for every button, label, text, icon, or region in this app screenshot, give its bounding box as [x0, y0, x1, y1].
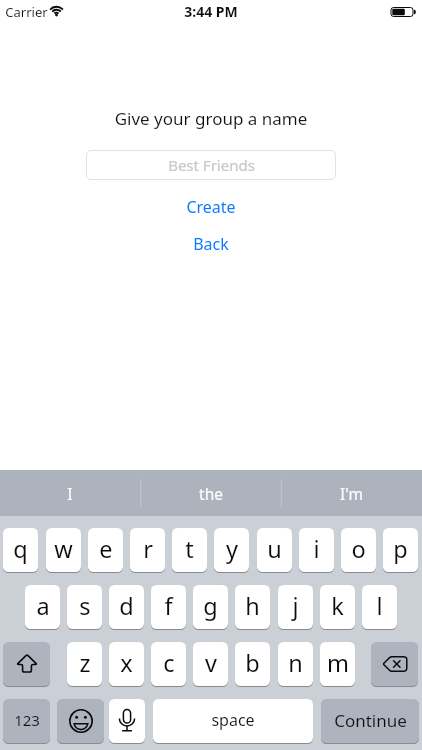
button[interactable]: x — [109, 642, 144, 686]
staticText: d — [119, 590, 134, 622]
staticText: n — [288, 647, 303, 679]
button[interactable]: m — [320, 642, 355, 686]
staticText: h — [245, 590, 260, 622]
button[interactable]: t — [172, 528, 207, 572]
staticText: space — [211, 709, 255, 731]
button[interactable]: h — [235, 585, 270, 629]
button[interactable]: 123 — [3, 699, 50, 743]
staticText: I — [67, 483, 73, 504]
staticText: a — [36, 590, 50, 622]
staticText: s — [79, 590, 91, 622]
staticText: Create — [186, 196, 236, 218]
button[interactable]: the — [140, 470, 281, 516]
staticText: z — [79, 647, 91, 679]
button[interactable]: r — [130, 528, 165, 572]
staticText: 123 — [14, 710, 40, 730]
staticText: u — [267, 533, 282, 565]
button[interactable]: g — [193, 585, 228, 629]
button[interactable]: a — [25, 585, 60, 629]
staticText: o — [351, 533, 366, 565]
button[interactable]: l — [362, 585, 397, 629]
staticText: w — [54, 533, 73, 565]
staticText: t — [185, 533, 194, 565]
staticText: c — [163, 647, 175, 679]
button[interactable]: o — [341, 528, 376, 572]
button[interactable] — [57, 699, 104, 743]
button[interactable]: k — [320, 585, 355, 629]
staticText: p — [393, 533, 408, 565]
button[interactable]: Best Friends — [86, 150, 336, 180]
staticText: v — [205, 647, 217, 679]
button[interactable]: d — [109, 585, 144, 629]
button[interactable]: Continue — [321, 699, 419, 743]
button[interactable]: v — [193, 642, 228, 686]
staticText: e — [99, 533, 113, 565]
staticText: Carrier — [5, 3, 48, 21]
button[interactable]: I'm — [281, 470, 421, 516]
button[interactable]: e — [88, 528, 123, 572]
button[interactable]: p — [383, 528, 418, 572]
staticText: 3:44 PM — [0, 2, 422, 21]
button[interactable]: f — [151, 585, 186, 629]
button[interactable] — [371, 642, 418, 686]
button[interactable] — [3, 642, 50, 686]
staticText: y — [226, 533, 238, 565]
button[interactable]: Back — [0, 233, 422, 255]
staticText: l — [376, 590, 383, 622]
button[interactable]: n — [278, 642, 313, 686]
staticText: Back — [193, 233, 229, 255]
staticText: Best Friends — [168, 155, 255, 175]
button[interactable]: b — [235, 642, 270, 686]
button[interactable]: space — [153, 699, 313, 743]
button[interactable]: w — [46, 528, 81, 572]
staticText: I'm — [340, 483, 363, 504]
staticText: f — [164, 590, 173, 622]
button[interactable]: j — [278, 585, 313, 629]
button[interactable]: I — [0, 470, 140, 516]
button[interactable]: i — [299, 528, 334, 572]
staticText: k — [331, 590, 344, 622]
staticText: Give your group a name — [0, 107, 422, 130]
button[interactable]: z — [67, 642, 102, 686]
button[interactable]: u — [257, 528, 292, 572]
button[interactable] — [109, 699, 145, 743]
staticText: i — [313, 533, 320, 565]
staticText: x — [120, 647, 133, 679]
button[interactable]: q — [3, 528, 38, 572]
button[interactable]: y — [214, 528, 249, 572]
staticText: q — [13, 533, 28, 565]
staticText: Continue — [334, 709, 407, 732]
staticText: m — [327, 647, 349, 679]
button[interactable]: Create — [0, 196, 422, 218]
staticText: r — [143, 533, 153, 565]
button[interactable]: s — [67, 585, 102, 629]
staticText: g — [203, 590, 218, 622]
button[interactable]: c — [151, 642, 186, 686]
staticText: b — [245, 647, 260, 679]
staticText: j — [292, 590, 299, 622]
staticText: the — [199, 483, 223, 504]
